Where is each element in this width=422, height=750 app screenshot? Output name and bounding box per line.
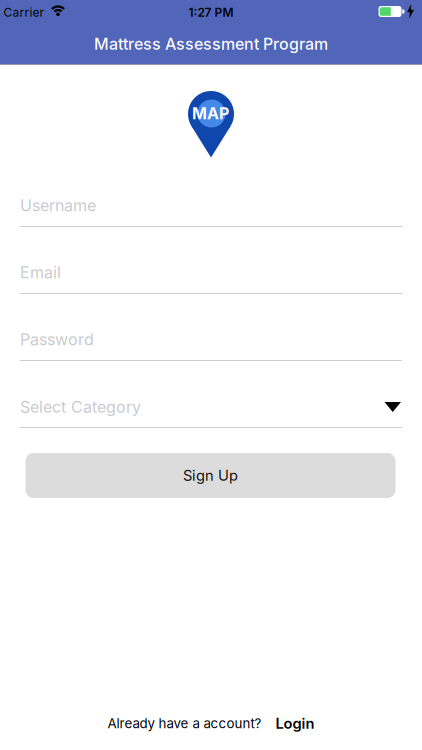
staticText: Username [20,196,96,215]
staticText: Password [20,330,94,349]
staticText: Select Category [20,398,141,416]
staticText: Sign Up [183,467,238,484]
button[interactable]: Username [20,195,402,227]
staticText: MAP [192,104,229,123]
staticText: Mattress Assessment Program [94,35,328,53]
staticText: Already have a account? [107,716,261,731]
staticText: 1:27 PM [188,5,233,20]
button[interactable]: Select Category [20,396,402,428]
button[interactable]: Sign Up [25,453,395,498]
button[interactable]: Email [20,262,402,294]
staticText: Login [275,715,314,732]
button[interactable]: Login [275,715,314,732]
staticText: Email [20,263,61,282]
button[interactable]: Password [20,329,402,361]
staticText: Carrier [3,5,44,20]
